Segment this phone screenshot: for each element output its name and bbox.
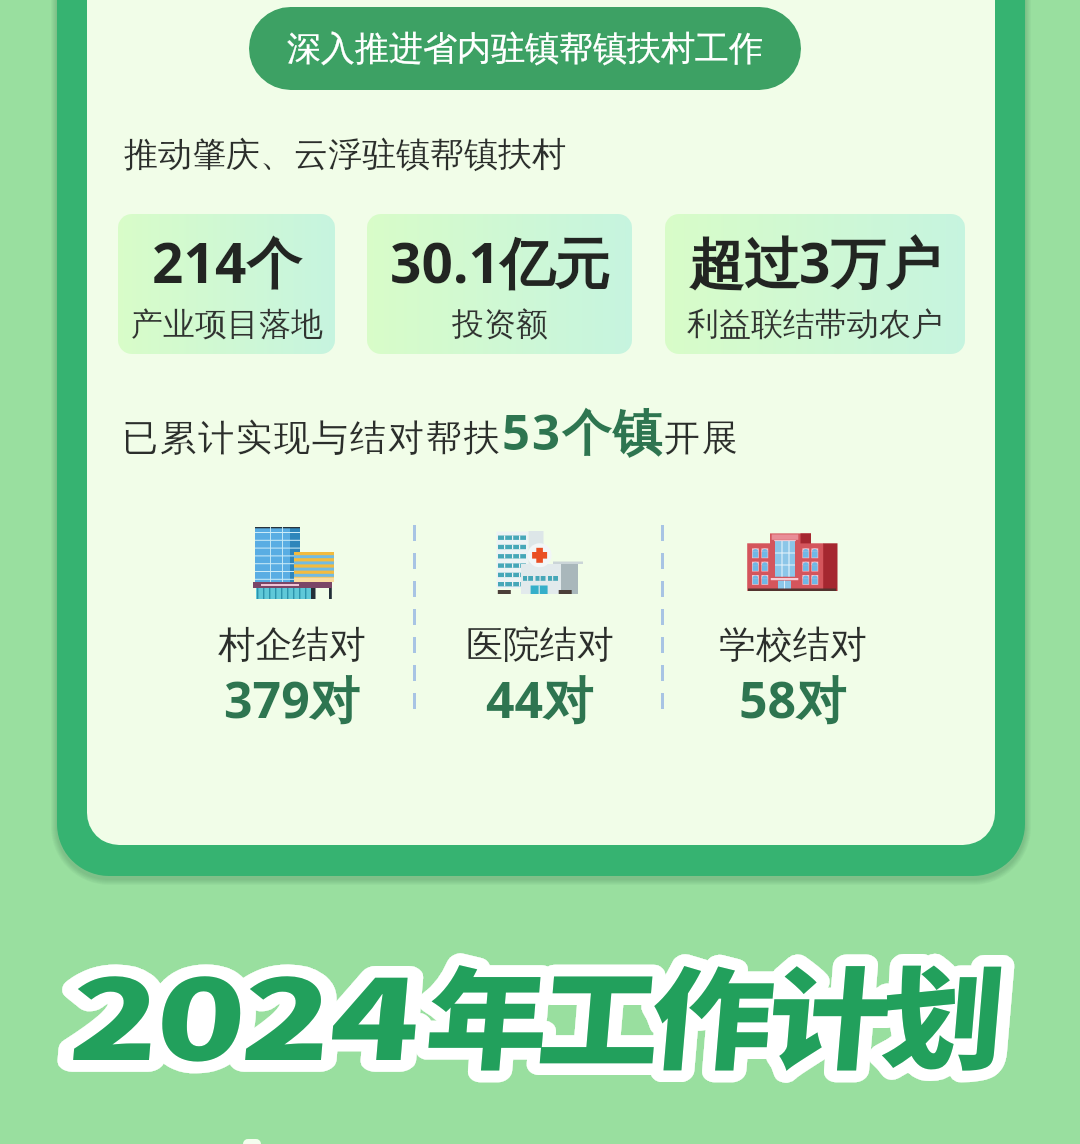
staticText: 深入推进省内驻镇帮镇扶村工作 bbox=[287, 27, 763, 70]
staticText: 产业项目落地 bbox=[131, 304, 323, 344]
staticText: 58对 bbox=[739, 665, 847, 733]
staticText: 379对 bbox=[224, 665, 360, 733]
button[interactable]: 30.1亿元 bbox=[367, 214, 632, 354]
staticText: 214个 bbox=[152, 224, 302, 299]
staticText: 超过3万户 bbox=[689, 224, 941, 299]
staticText: 投资额 bbox=[452, 304, 548, 344]
staticText: 利益联结带动农户 bbox=[687, 304, 943, 344]
button[interactable]: 村企结对 bbox=[192, 515, 392, 730]
button[interactable]: 214个 bbox=[118, 214, 335, 354]
button[interactable]: 超过3万户 bbox=[665, 214, 965, 354]
staticText: 推动肇庆、云浮驻镇帮镇扶村 bbox=[124, 133, 566, 176]
staticText: 村企结对 bbox=[218, 621, 366, 668]
staticText: 已累计实现与结对帮扶53个镇开展 bbox=[122, 398, 741, 465]
button[interactable]: 医院结对 bbox=[440, 515, 640, 730]
staticText: 30.1亿元 bbox=[390, 224, 610, 299]
staticText: 医院结对 bbox=[466, 621, 614, 668]
staticText: 学校结对 bbox=[719, 621, 867, 668]
button[interactable]: 学校结对 bbox=[693, 515, 893, 730]
other: 2024年工作计划 bbox=[0, 930, 1080, 1130]
staticText: 44对 bbox=[486, 665, 594, 733]
button[interactable]: 深入推进省内驻镇帮镇扶村工作 bbox=[249, 7, 801, 90]
